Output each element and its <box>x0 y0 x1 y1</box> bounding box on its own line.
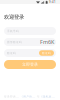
button[interactable]: 立即登录 <box>4 60 56 69</box>
staticText: 手机号码 <box>7 29 19 33</box>
button[interactable]: 验证码 <box>39 50 54 56</box>
staticText: 图形验证码 <box>7 40 22 44</box>
staticText: 欢迎登录 <box>4 14 24 20</box>
staticText: 验证码 <box>42 51 51 55</box>
staticText: Fm6K <box>40 38 54 46</box>
staticText: 登录即表示同意 <box>4 95 20 98</box>
staticText: 《用户协议》 <box>20 95 37 98</box>
staticText: 立即登录 <box>22 62 38 67</box>
staticText: 9:41 <box>49 0 56 4</box>
staticText: 《隐私政策》 <box>40 95 56 98</box>
button[interactable]: 登录即表示同意 <box>4 95 56 98</box>
staticText: 与 <box>37 95 40 98</box>
button[interactable]: Refresh captcha image <box>39 39 54 45</box>
staticText: 验证码 <box>7 51 16 55</box>
